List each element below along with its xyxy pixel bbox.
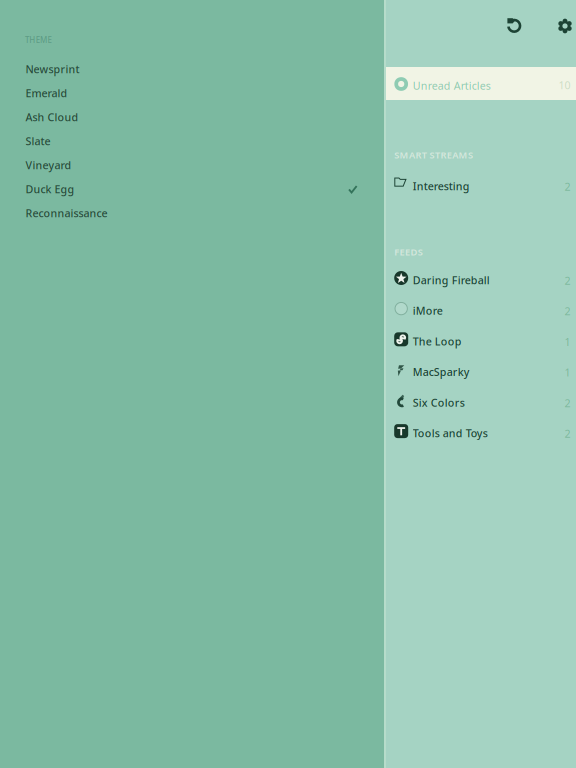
staticText: iMore <box>413 303 443 318</box>
staticText: Vineyard <box>25 158 71 172</box>
staticText: SMART STREAMS <box>394 149 473 161</box>
button[interactable]: Tools and Toys <box>384 419 576 450</box>
staticText: FEEDS <box>394 246 423 258</box>
staticText: 2 <box>564 304 570 318</box>
button[interactable]: Reconnaissance <box>0 206 384 230</box>
staticText: 1 <box>564 335 570 349</box>
button[interactable]: iMore <box>384 297 576 328</box>
staticText: Newsprint <box>25 62 79 76</box>
button[interactable]: Emerald <box>0 86 384 110</box>
button[interactable]: Duck Egg <box>0 182 384 206</box>
button[interactable]: Slate <box>0 134 384 158</box>
button[interactable]: The Loop <box>384 327 576 358</box>
staticText: 2 <box>564 396 570 410</box>
staticText: 1 <box>564 365 570 379</box>
staticText: Six Colors <box>413 395 465 410</box>
staticText: MacSparky <box>413 365 470 379</box>
staticText: Duck Egg <box>25 182 74 196</box>
staticText: Tools and Toys <box>413 426 488 440</box>
staticText: Reconnaissance <box>25 206 107 220</box>
button[interactable]: Interesting <box>384 172 576 203</box>
staticText: Daring Fireball <box>413 273 490 287</box>
button[interactable]: Daring Fireball <box>384 266 576 297</box>
staticText: THEME <box>25 35 51 45</box>
button[interactable]: Unread Articles <box>384 67 576 100</box>
staticText: 2 <box>564 273 570 288</box>
button[interactable]: Ash Cloud <box>0 110 384 134</box>
button[interactable]: Vineyard <box>0 158 384 182</box>
button[interactable]: Six Colors <box>384 388 576 419</box>
staticText: The Loop <box>413 334 462 348</box>
staticText: 2 <box>564 179 570 194</box>
staticText: Slate <box>25 134 50 148</box>
button[interactable]: MacSparky <box>384 358 576 389</box>
button[interactable]: Settings <box>545 6 576 46</box>
staticText: 10 <box>558 78 570 92</box>
staticText: 2 <box>564 426 570 441</box>
staticText: Interesting <box>413 179 470 193</box>
staticText: Ash Cloud <box>25 110 78 124</box>
button[interactable]: Refresh <box>494 6 534 46</box>
staticText: Emerald <box>25 86 67 100</box>
button[interactable]: Newsprint <box>0 62 384 86</box>
staticText: Unread Articles <box>413 78 491 93</box>
